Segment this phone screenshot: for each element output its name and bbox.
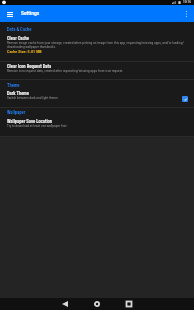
staticText: Data & Cache: [7, 27, 32, 32]
staticText: Try to download at least one wallpaper f…: [7, 124, 68, 128]
staticText: Wallpaper Save Location: [7, 119, 53, 124]
staticText: 10:16: [183, 0, 191, 4]
staticText: Wallpaper: [7, 110, 26, 115]
button[interactable]: Clear Icon Request Data: [0, 64, 194, 79]
staticText: Settings: [21, 10, 40, 17]
staticText: Switch between dark and light theme: [7, 96, 58, 100]
staticText: Clear Icon Request Data: [7, 64, 52, 69]
staticText: Remove icon request data, created after …: [7, 69, 124, 73]
button[interactable]: Clear Cache: [0, 36, 194, 61]
button[interactable]: Dark Theme: [0, 91, 194, 107]
button[interactable]: Back: [58, 298, 72, 310]
staticText: Clear Cache: [7, 36, 30, 41]
button[interactable]: Recent apps: [122, 298, 136, 310]
staticText: Theme: [7, 83, 20, 88]
staticText: Dark Theme: [7, 91, 29, 96]
button[interactable]: Wallpaper Save Location: [0, 119, 194, 136]
button[interactable]: Home: [90, 298, 104, 310]
staticText: Remove image cache from your storage, cr…: [7, 41, 189, 49]
button[interactable]: More options: [180, 8, 192, 20]
staticText: Cache Size: 5.01 MB: [7, 49, 42, 54]
button[interactable]: Dark theme toggle: [182, 96, 188, 102]
button[interactable]: Open navigation drawer: [4, 8, 16, 20]
